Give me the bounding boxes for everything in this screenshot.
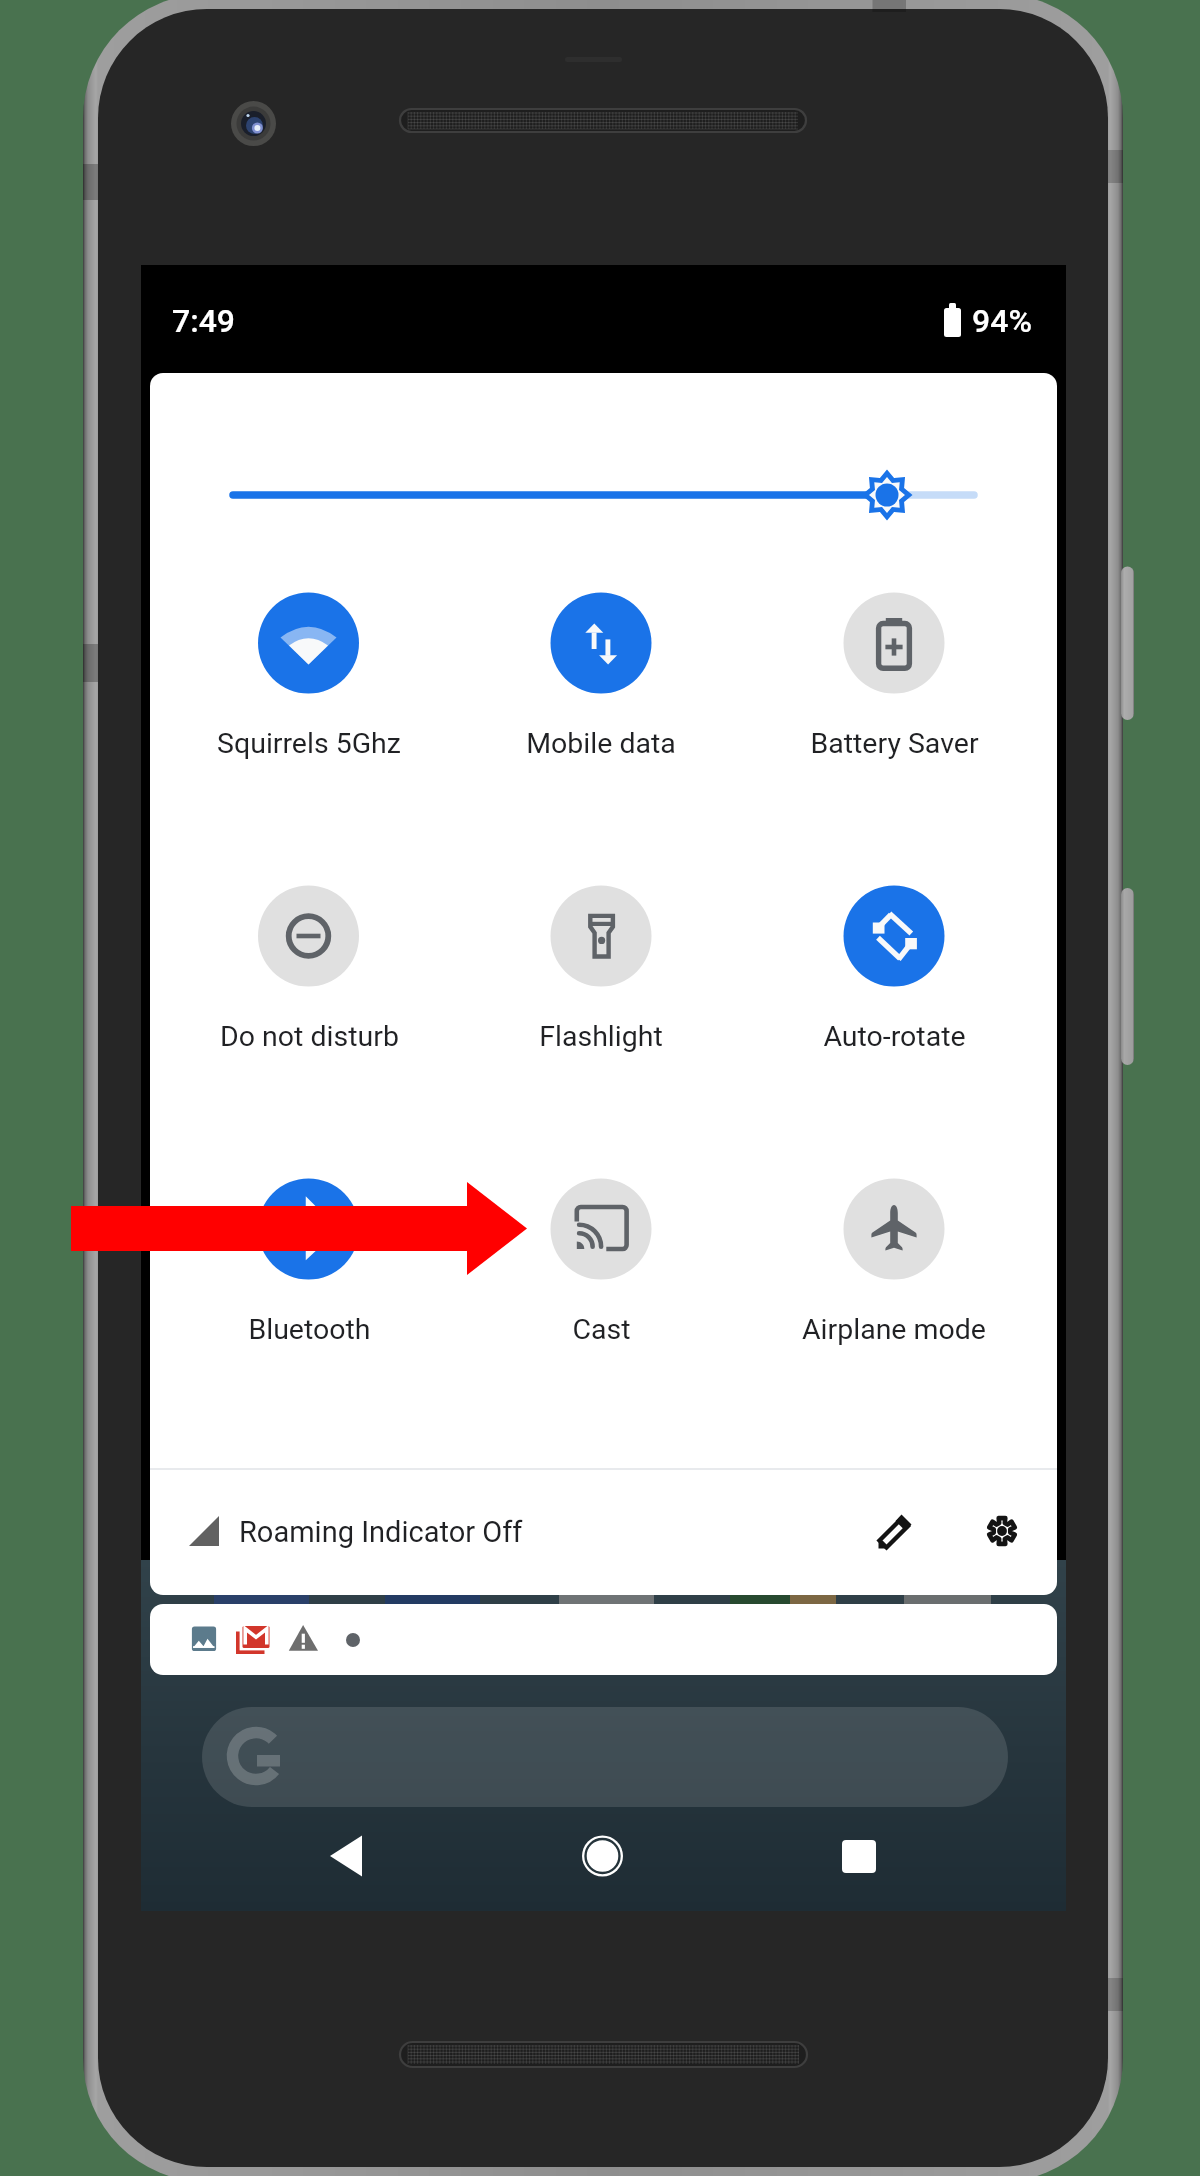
button[interactable]: Bluetooth <box>199 1169 419 1314</box>
button[interactable]: Back <box>305 1818 385 1898</box>
staticText: Squirrels 5Ghz <box>217 727 401 760</box>
staticText: Roaming Indicator Off <box>239 1515 523 1549</box>
button[interactable]: Squirrels 5Ghz <box>199 583 419 728</box>
button[interactable]: Auto-rotate <box>784 876 1004 1021</box>
staticText: Cast <box>572 1313 631 1346</box>
staticText: Battery Saver <box>810 727 979 760</box>
staticText: Flashlight <box>539 1020 663 1053</box>
button[interactable]: Home <box>563 1818 643 1898</box>
staticText: 94% <box>972 302 1032 340</box>
staticText: 7:49 <box>172 302 236 340</box>
button[interactable]: Recent apps <box>817 1818 897 1898</box>
button[interactable]: Edit <box>865 1501 925 1561</box>
staticText: Do not disturb <box>220 1020 399 1053</box>
staticText: Mobile data <box>526 727 676 760</box>
staticText: Airplane mode <box>802 1313 986 1346</box>
staticText: Auto-rotate <box>823 1020 966 1053</box>
button[interactable]: Airplane mode <box>784 1169 1004 1314</box>
button[interactable]: Cast <box>491 1169 711 1314</box>
button[interactable]: Battery Saver <box>784 583 1004 728</box>
button[interactable]: Flashlight <box>491 876 711 1021</box>
button[interactable]: Search <box>202 1707 1008 1804</box>
button[interactable]: Mobile data <box>491 583 711 728</box>
button[interactable]: Settings <box>972 1501 1032 1561</box>
button[interactable]: Do not disturb <box>199 876 419 1021</box>
staticText: Bluetooth <box>248 1313 371 1346</box>
